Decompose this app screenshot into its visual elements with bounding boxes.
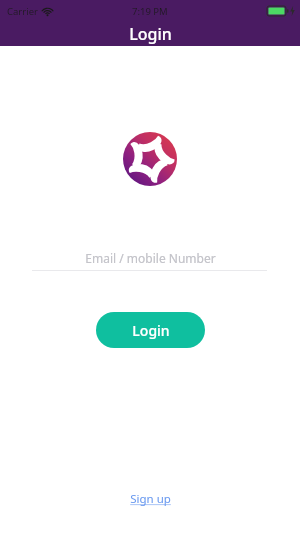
button[interactable]: Login: [96, 312, 205, 348]
staticText: Login: [132, 321, 170, 340]
other: App logo: [123, 132, 177, 186]
staticText: Email / mobile Number: [85, 250, 216, 266]
staticText: Carrier: [7, 5, 38, 18]
staticText: Login: [129, 23, 172, 45]
staticText: 7:19 PM: [132, 5, 168, 18]
button[interactable]: Email / mobile Number: [32, 246, 268, 270]
button[interactable]: Sign up: [122, 487, 179, 511]
staticText: Sign up: [130, 491, 171, 507]
